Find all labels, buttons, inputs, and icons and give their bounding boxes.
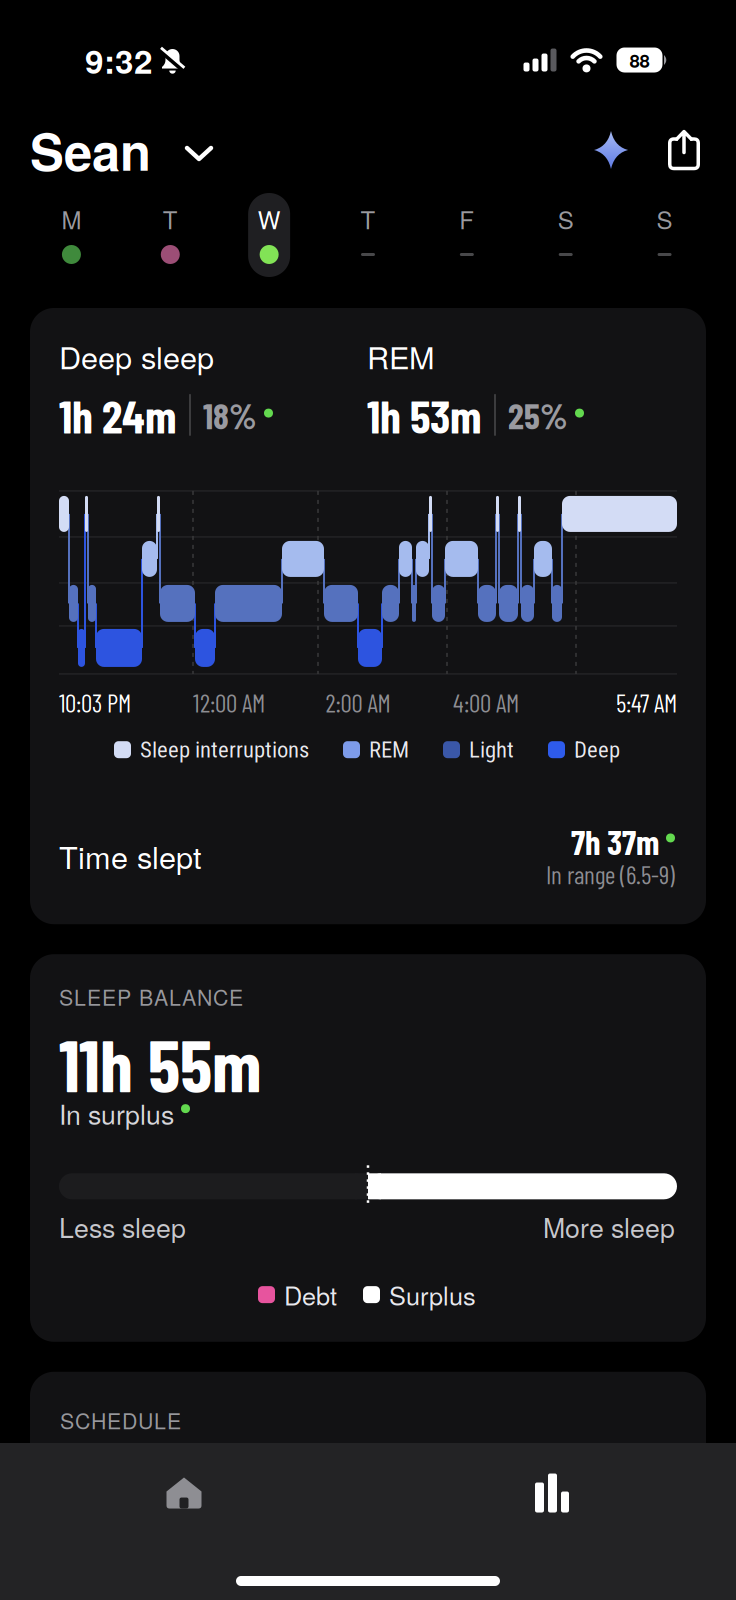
button[interactable]: T [319, 193, 417, 277]
staticText: Less sleep [59, 1207, 186, 1245]
staticText: More sleep [543, 1207, 675, 1245]
staticText: Deep [574, 741, 620, 758]
button[interactable]: W [220, 193, 319, 277]
button[interactable] [628, 130, 700, 170]
staticText: S C H E D U L E [60, 1405, 181, 1435]
staticText: T [360, 202, 375, 236]
staticText: 9:32 [85, 36, 153, 84]
staticText: 7h 37m [571, 827, 659, 855]
staticText: M [61, 202, 81, 236]
staticText: 1h 53m [367, 396, 482, 433]
button[interactable] [0, 1443, 368, 1543]
staticText: 1h 24m [59, 396, 177, 433]
staticText: F [459, 202, 474, 236]
staticText: Time slept [59, 834, 202, 878]
staticText: 12:00 AM [193, 692, 265, 712]
button[interactable]: T [121, 193, 220, 277]
staticText: S [657, 202, 673, 236]
staticText: Deep sleep [59, 334, 214, 378]
button[interactable]: M [22, 193, 121, 277]
button[interactable] [368, 1443, 736, 1543]
button[interactable] [594, 131, 628, 169]
staticText: 11h 55m [59, 1034, 262, 1092]
staticText: In range (6.5-9) [546, 864, 675, 884]
staticText: 2:00 AM [325, 692, 390, 712]
staticText: REM [369, 741, 409, 758]
staticText: 18% [203, 401, 257, 429]
staticText: 10:03 PM [59, 692, 131, 712]
button[interactable]: F [417, 193, 516, 277]
staticText: T [163, 202, 178, 236]
staticText: REM [367, 334, 435, 378]
staticText: 4:00 AM [453, 692, 519, 712]
staticText: Surplus [389, 1276, 476, 1313]
staticText: In surplus [59, 1094, 174, 1132]
staticText: 25% [508, 401, 568, 429]
staticText: Light [469, 741, 514, 758]
button[interactable]: S [615, 193, 714, 277]
button[interactable]: S [516, 193, 615, 277]
staticText: Sean [30, 114, 151, 186]
staticText: W [258, 202, 281, 236]
button[interactable]: Sean [30, 114, 213, 186]
staticText: Sleep interruptions [140, 741, 309, 758]
staticText: 88 [629, 47, 649, 73]
staticText: Debt [284, 1276, 337, 1313]
staticText: S L E E P B A L A N C E [59, 981, 243, 1012]
staticText: S [558, 202, 574, 236]
staticText: 5:47 AM [616, 692, 677, 712]
